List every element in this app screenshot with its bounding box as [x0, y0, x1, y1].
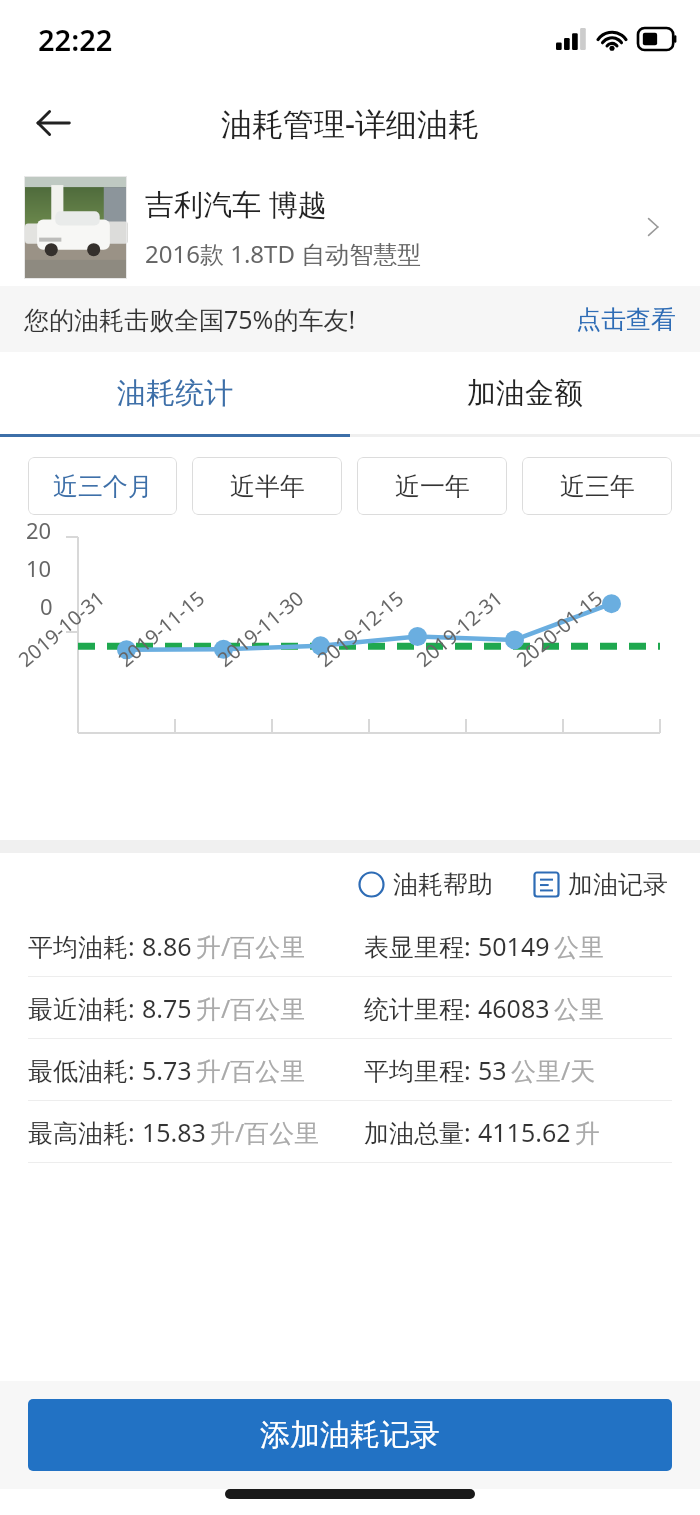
staticText: 升 [575, 1118, 600, 1149]
button[interactable]: 近一年 [357, 457, 507, 515]
staticText: 4115.62 [478, 1115, 571, 1149]
button[interactable]: 近三年 [522, 457, 672, 515]
button[interactable]: 加油金额 [350, 352, 700, 434]
staticText: 22:22 [38, 20, 113, 59]
button[interactable]: 加油记录 [525, 863, 676, 906]
staticText: 油耗帮助 [393, 869, 493, 900]
staticText: 公里 [554, 994, 604, 1025]
staticText: 您的油耗击败全国75%的车友! [24, 302, 356, 336]
button[interactable]: Back [22, 92, 84, 154]
button[interactable]: 油耗统计 [0, 352, 350, 434]
button[interactable]: 近三个月 [28, 457, 177, 515]
staticText: 升/百公里 [196, 991, 306, 1025]
staticText: 2019-11-15 [113, 584, 210, 673]
staticText: 最高油耗: [28, 1115, 142, 1149]
staticText: 8.75 [142, 991, 192, 1025]
staticText: 5.73 [142, 1053, 192, 1087]
staticText: 加油总量: [364, 1115, 478, 1149]
staticText: 近半年 [230, 471, 305, 502]
staticText: 2019-10-31 [13, 584, 110, 673]
staticText: 最低油耗: [28, 1053, 142, 1087]
staticText: 油耗统计 [117, 375, 233, 412]
button[interactable]: 添加油耗记录 [28, 1399, 672, 1471]
button[interactable]: 油耗帮助 [350, 863, 501, 906]
staticText: 平均里程: [364, 1053, 478, 1087]
staticText: 油耗管理-详细油耗 [221, 102, 479, 144]
staticText: 近三个月 [53, 471, 153, 502]
staticText: 2016款 1.8TD 自动智慧型 [145, 237, 422, 270]
staticText: 50149 [478, 929, 550, 963]
staticText: 公里/天 [511, 1053, 596, 1087]
staticText: 2019-12-15 [312, 584, 409, 673]
staticText: 46083 [478, 991, 550, 1025]
staticText: 加油金额 [467, 375, 583, 412]
staticText: 公里 [554, 932, 604, 963]
staticText: 添加油耗记录 [260, 1416, 440, 1454]
staticText: 近一年 [395, 471, 470, 502]
staticText: 升/百公里 [196, 929, 306, 963]
staticText: 点击查看 [576, 304, 676, 335]
staticText: 升/百公里 [210, 1115, 320, 1149]
staticText: 8.86 [142, 929, 192, 963]
button[interactable]: 点击查看 [552, 294, 700, 345]
staticText: 15.83 [142, 1115, 206, 1149]
button[interactable]: 吉利汽车 博越 [0, 168, 700, 286]
staticText: 最近油耗: [28, 991, 142, 1025]
staticText: 2019-12-31 [411, 584, 508, 673]
staticText: 统计里程: [364, 991, 478, 1025]
staticText: 2019-11-30 [212, 584, 309, 673]
staticText: 加油记录 [568, 869, 668, 900]
staticText: 平均油耗: [28, 929, 142, 963]
staticText: 10 [26, 553, 52, 583]
staticText: 0 [40, 591, 53, 621]
staticText: 吉利汽车 博越 [145, 184, 327, 224]
staticText: 53 [478, 1053, 507, 1087]
button[interactable]: 近半年 [192, 457, 342, 515]
staticText: 20 [26, 515, 52, 545]
staticText: 表显里程: [364, 929, 478, 963]
staticText: 升/百公里 [196, 1053, 306, 1087]
staticText: 2020-01-15 [511, 584, 608, 673]
staticText: 近三年 [560, 471, 635, 502]
